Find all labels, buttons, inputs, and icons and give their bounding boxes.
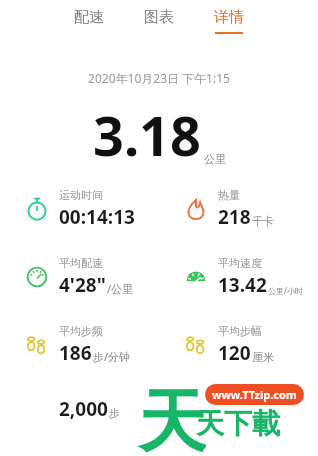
- staticText: 运动时间: [59, 188, 103, 202]
- staticText: 公里: [204, 152, 226, 166]
- staticText: /公里: [107, 281, 134, 296]
- staticText: 公里/小时: [268, 285, 303, 296]
- other: 平均速度: [183, 264, 209, 290]
- button[interactable]: 步数: [0, 396, 159, 422]
- staticText: 热量: [218, 188, 240, 202]
- button[interactable]: 图表: [136, 6, 182, 36]
- staticText: 厘米: [252, 350, 274, 364]
- other: 平均配速: [24, 264, 50, 290]
- staticText: 186: [59, 340, 92, 366]
- other: 平均步幅: [183, 332, 209, 358]
- staticText: 13.42: [218, 272, 267, 298]
- staticText: www.TTzip.com: [212, 387, 297, 402]
- staticText: 详情: [214, 8, 244, 27]
- other: 热量: [183, 196, 209, 222]
- staticText: 图表: [144, 8, 174, 27]
- other: 平均步频: [24, 332, 50, 358]
- staticText: 配速: [74, 8, 104, 27]
- staticText: 4'28": [59, 272, 106, 298]
- staticText: 120: [218, 340, 251, 366]
- staticText: 平均步频: [59, 324, 103, 338]
- button[interactable]: 运动时间: [0, 188, 159, 230]
- staticText: 2,000: [59, 396, 108, 422]
- button[interactable]: 平均配速: [0, 256, 159, 298]
- staticText: 步/分钟: [93, 349, 131, 364]
- staticText: 天: [138, 380, 206, 452]
- staticText: 平均步幅: [218, 324, 262, 338]
- staticText: 平均速度: [218, 256, 262, 270]
- staticText: 00:14:13: [59, 204, 135, 230]
- staticText: 3.18: [93, 98, 201, 172]
- other: 运动时间: [24, 196, 50, 222]
- button[interactable]: 平均速度: [159, 256, 318, 298]
- staticText: 2020年10月23日 下午1:15: [0, 70, 318, 86]
- staticText: 天下載: [196, 406, 280, 441]
- staticText: 步: [109, 406, 120, 420]
- staticText: 218: [218, 204, 251, 230]
- button[interactable]: 热量: [159, 188, 318, 230]
- button[interactable]: 平均步频: [0, 324, 159, 366]
- staticText: 千卡: [252, 214, 274, 228]
- button[interactable]: 配速: [66, 6, 112, 36]
- button[interactable]: 详情: [206, 6, 252, 36]
- staticText: 平均配速: [59, 256, 103, 270]
- button[interactable]: 平均步幅: [159, 324, 318, 366]
